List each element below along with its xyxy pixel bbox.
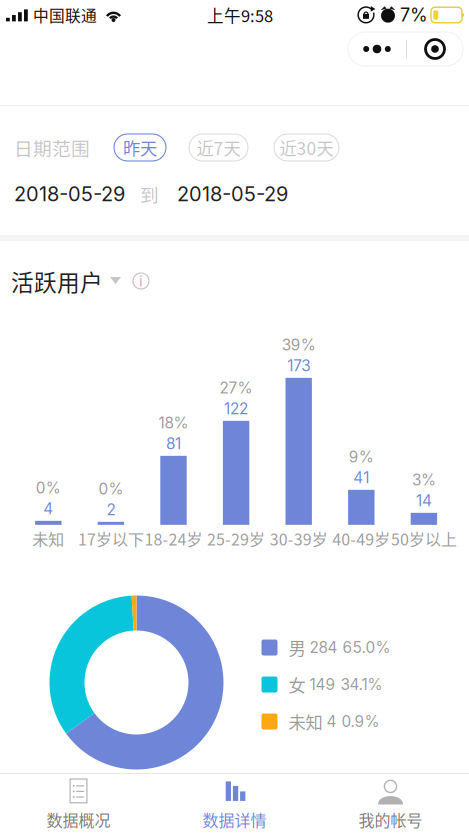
staticText: 30-39岁 (270, 527, 328, 550)
button[interactable]: 活跃用户 (0, 268, 469, 294)
staticText: 4 (326, 712, 336, 731)
staticText: 4 (43, 499, 53, 518)
staticText: 81 (166, 434, 181, 453)
staticText: 122 (224, 399, 248, 418)
staticText: 3% (412, 471, 436, 489)
staticText: 近7天 (196, 135, 240, 160)
staticText: 数据概况 (46, 808, 110, 831)
button[interactable]: 近30天 (274, 134, 339, 161)
staticText: 2018-05-29 (177, 182, 288, 206)
button[interactable]: 我的帐号 (312, 774, 468, 834)
staticText: 昨天 (123, 135, 157, 160)
staticText: 17岁以下 (78, 527, 144, 550)
staticText: 18-24岁 (144, 527, 202, 550)
button[interactable]: 数据详情 (156, 774, 312, 834)
staticText: 284 (309, 638, 337, 657)
staticText: 40-49岁 (332, 527, 390, 550)
staticText: 9% (349, 448, 374, 466)
staticText: 近30天 (279, 135, 333, 160)
staticText: 女 (288, 672, 305, 697)
staticText: 173 (287, 356, 310, 375)
button[interactable]: Menu (348, 32, 463, 66)
staticText: 41 (353, 468, 369, 487)
staticText: 0.9% (341, 712, 379, 731)
staticText: 2018-05-29 (14, 182, 125, 206)
staticText: 上午9:58 (207, 3, 273, 27)
button[interactable]: 昨天 (114, 134, 166, 161)
staticText: 25-29岁 (207, 527, 265, 550)
staticText: 7% (400, 4, 428, 26)
staticText: 活跃用户 (11, 265, 103, 297)
staticText: 0% (36, 479, 61, 497)
button[interactable]: 近7天 (189, 134, 248, 161)
staticText: i (139, 272, 143, 290)
staticText: 27% (220, 379, 253, 397)
staticText: 39% (282, 336, 316, 354)
staticText: 149 (309, 675, 335, 694)
staticText: 我的帐号 (358, 808, 422, 831)
staticText: 50岁以上 (391, 527, 457, 550)
staticText: 男 (288, 635, 305, 660)
staticText: 未知 (288, 709, 322, 734)
button[interactable]: 数据概况 (0, 774, 156, 834)
staticText: 18% (158, 414, 188, 432)
staticText: 65.0% (342, 638, 390, 657)
staticText: 14 (416, 491, 432, 510)
staticText: 2 (106, 500, 115, 519)
staticText: 34.1% (340, 675, 382, 694)
staticText: 中国联通 (33, 4, 97, 26)
staticText: 0% (98, 480, 123, 498)
staticText: 日期范围 (14, 134, 90, 161)
staticText: 到 (140, 180, 159, 207)
staticText: 未知 (32, 527, 64, 550)
staticText: 数据详情 (202, 808, 266, 831)
